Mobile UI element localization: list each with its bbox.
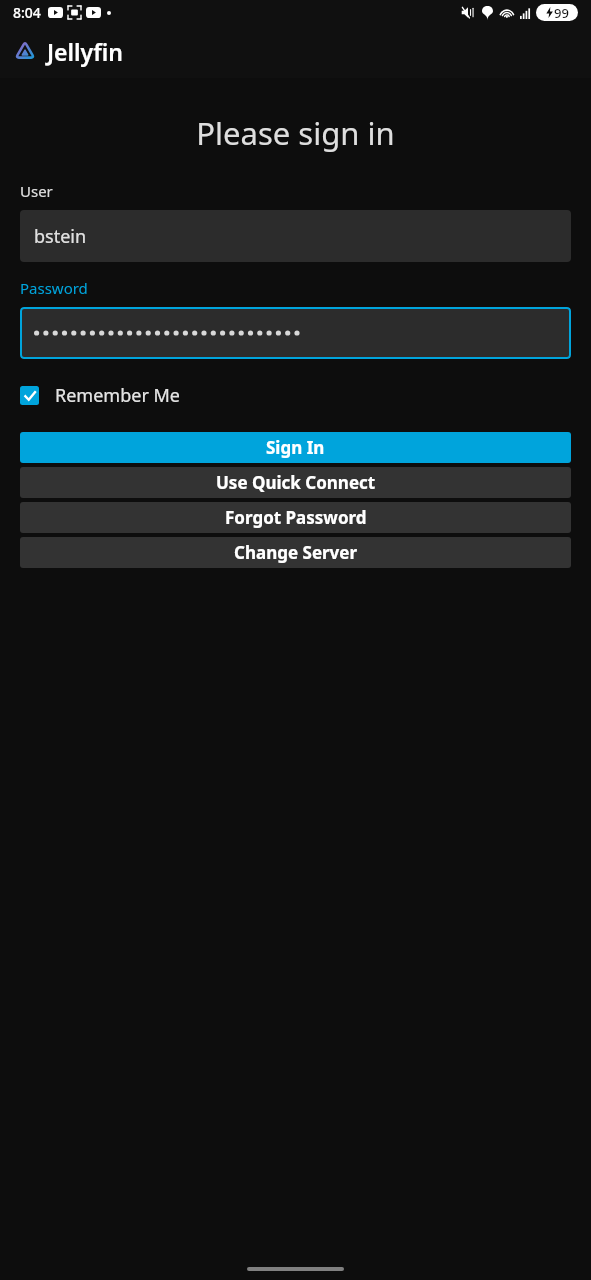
staticText: Forgot Password — [225, 506, 367, 529]
button[interactable]: bstein — [20, 210, 571, 262]
staticText: Change Server — [234, 541, 358, 564]
button[interactable]: Sign In — [20, 432, 571, 463]
staticText: Use Quick Connect — [216, 471, 376, 494]
staticText: 8:04 — [13, 3, 41, 22]
staticText: Password — [20, 278, 88, 298]
button[interactable]: Use Quick Connect — [20, 467, 571, 498]
staticText: Please sign in — [0, 112, 591, 154]
staticText: User — [20, 181, 53, 201]
staticText: 99 — [554, 4, 569, 21]
button[interactable]: Forgot Password — [20, 502, 571, 533]
staticText: Sign In — [266, 436, 325, 459]
staticText: Jellyfin — [47, 36, 123, 67]
staticText: Remember Me — [55, 383, 180, 408]
staticText: bstein — [34, 224, 87, 249]
button[interactable]: Remember Me — [20, 379, 180, 412]
button[interactable] — [20, 307, 571, 359]
button[interactable]: Change Server — [20, 537, 571, 568]
